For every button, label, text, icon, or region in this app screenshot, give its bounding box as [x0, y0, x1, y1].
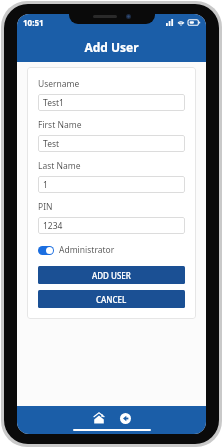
button[interactable]: ADD USER [38, 266, 185, 284]
staticText: Administrator [59, 244, 115, 256]
staticText: Username [38, 78, 80, 90]
button[interactable]: CANCEL [38, 290, 185, 308]
staticText: 1234 [43, 220, 63, 232]
staticText: ADD USER [92, 270, 131, 281]
staticText: 1 [43, 179, 48, 191]
staticText: First Name [38, 119, 82, 131]
button[interactable]: Back [116, 409, 134, 427]
staticText: 10:51 [23, 17, 44, 28]
staticText: PIN [38, 201, 53, 213]
button[interactable]: 1234 [38, 217, 185, 234]
staticText: Add User [84, 39, 139, 55]
button[interactable]: 1 [38, 176, 185, 193]
staticText: Test1 [43, 97, 64, 109]
staticText: CANCEL [96, 294, 127, 305]
button[interactable]: Test1 [38, 94, 185, 111]
button[interactable]: Home [90, 409, 108, 427]
staticText: Test [43, 138, 60, 150]
staticText: Last Name [38, 160, 81, 172]
button[interactable]: Administrator [38, 243, 115, 257]
button[interactable]: Test [38, 135, 185, 152]
